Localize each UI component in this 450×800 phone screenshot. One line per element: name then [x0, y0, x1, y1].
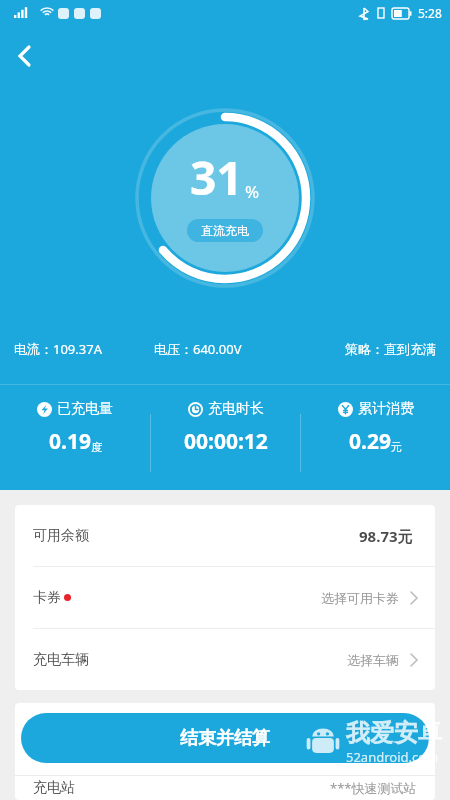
staticText: 31	[190, 146, 243, 209]
staticText: 卡券	[33, 589, 61, 607]
staticText: 我爱安卓	[346, 718, 442, 748]
staticText: 5:28	[418, 5, 442, 21]
button[interactable]: 可用余额	[15, 505, 435, 566]
staticText: 0.19	[49, 427, 91, 456]
staticText: 充电时长	[208, 400, 264, 418]
staticText: 0.29	[349, 427, 391, 456]
staticText: 电压：640.00V	[154, 340, 242, 358]
staticText: 00:00:12	[184, 427, 268, 456]
button[interactable]: 卡券	[15, 567, 435, 628]
staticText: 选择可用卡券	[321, 590, 399, 606]
button[interactable]: 已充电量	[0, 400, 150, 456]
staticText: %	[245, 180, 260, 203]
button[interactable]: Back	[3, 35, 45, 77]
staticText: 选择车辆	[347, 652, 399, 668]
button[interactable]: 累计消费	[301, 400, 450, 456]
button[interactable]: 结束并结算	[21, 713, 429, 763]
staticText: 策略：直到充满	[345, 341, 436, 357]
staticText: 已充电量	[57, 400, 113, 418]
button[interactable]: 充电时长	[151, 400, 300, 456]
staticText: 充电车辆	[33, 651, 89, 669]
staticText: 可用余额	[33, 527, 89, 545]
staticText: ***快速测试站	[330, 779, 417, 797]
staticText: 直流充电	[201, 223, 249, 238]
staticText: 元	[391, 440, 402, 454]
button[interactable]: 充电站	[15, 776, 435, 800]
staticText: 充电站	[33, 779, 75, 797]
staticText: 98.73元	[359, 526, 413, 546]
button[interactable]: 直流充电	[187, 219, 263, 242]
staticText: 累计消费	[358, 400, 414, 418]
staticText: 度	[91, 440, 102, 454]
staticText: 结束并结算	[180, 727, 270, 750]
button[interactable]: 充电车辆	[15, 629, 435, 690]
staticText: 电流：109.37A	[14, 340, 102, 358]
staticText: 52android.com	[346, 748, 439, 766]
